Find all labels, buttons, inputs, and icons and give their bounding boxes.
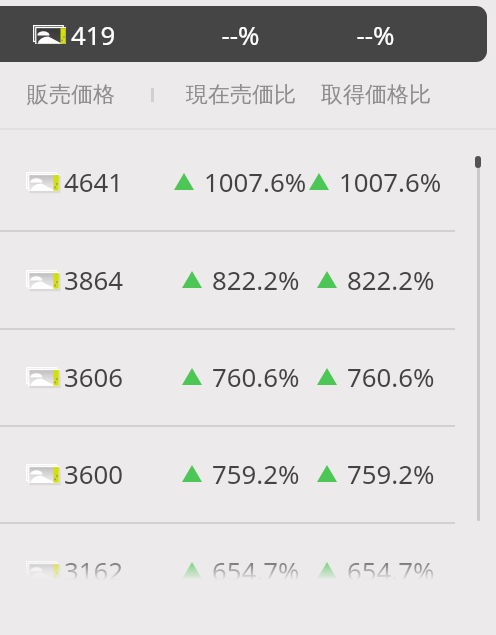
button[interactable]: 現在売価比 [173, 62, 308, 128]
staticText: 654.7% [347, 553, 435, 588]
button[interactable]: 4641 [0, 134, 496, 232]
staticText: 760.6% [347, 359, 435, 394]
staticText: 3864 [64, 262, 124, 297]
staticText: --% [173, 17, 308, 52]
staticText: --% [308, 17, 443, 52]
button[interactable]: 3606 [0, 330, 496, 427]
staticText: 1007.6% [339, 164, 442, 199]
staticText: 販売価格 [27, 81, 115, 109]
staticText: 取得価格比 [321, 81, 431, 109]
button[interactable]: 3600 [0, 427, 496, 524]
staticText: 654.7% [212, 553, 300, 588]
staticText: 3600 [64, 456, 124, 491]
button[interactable]: 419 [0, 6, 487, 62]
staticText: 419 [71, 17, 116, 52]
staticText: 3162 [64, 553, 124, 588]
staticText: 822.2% [347, 262, 435, 297]
staticText: 1007.6% [204, 164, 307, 199]
button[interactable]: 販売価格 [0, 62, 173, 128]
staticText: 759.2% [212, 456, 300, 491]
button[interactable]: 取得価格比 [308, 62, 443, 128]
staticText: 759.2% [347, 456, 435, 491]
staticText: 3606 [64, 359, 124, 394]
staticText: 4641 [64, 164, 124, 199]
staticText: 現在売価比 [186, 81, 296, 109]
other: Scroll position [475, 156, 481, 168]
button[interactable]: 3864 [0, 232, 496, 330]
button[interactable]: 3162 [0, 524, 496, 621]
staticText: 822.2% [212, 262, 300, 297]
staticText: 760.6% [212, 359, 300, 394]
